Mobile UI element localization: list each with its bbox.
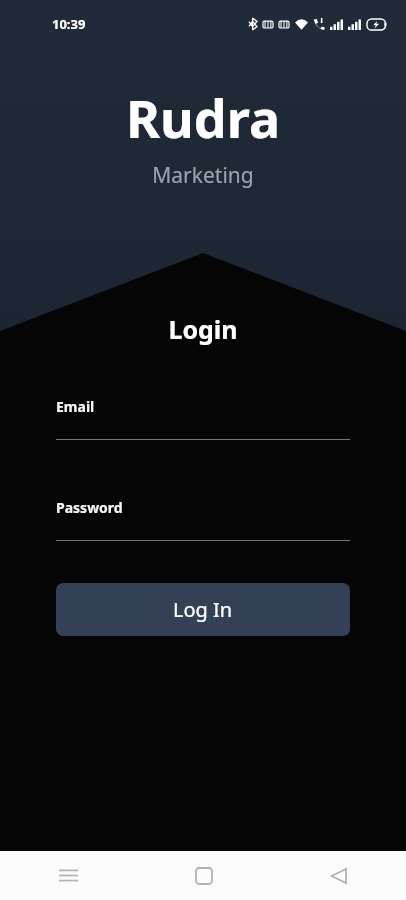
staticText: Password — [56, 498, 123, 517]
staticText: Rudra — [0, 82, 406, 153]
button[interactable]: Home — [136, 851, 271, 900]
button[interactable]: Log In — [56, 583, 350, 636]
staticText: Login — [0, 312, 406, 346]
button[interactable]: Password — [56, 498, 350, 541]
staticText: Email — [56, 397, 95, 416]
staticText: 10:39 — [52, 15, 86, 33]
button[interactable]: Email — [56, 397, 350, 440]
button[interactable]: Back — [271, 851, 406, 900]
button[interactable]: Recent apps — [0, 851, 136, 900]
staticText: Marketing — [0, 161, 406, 190]
staticText: Log In — [173, 596, 233, 623]
